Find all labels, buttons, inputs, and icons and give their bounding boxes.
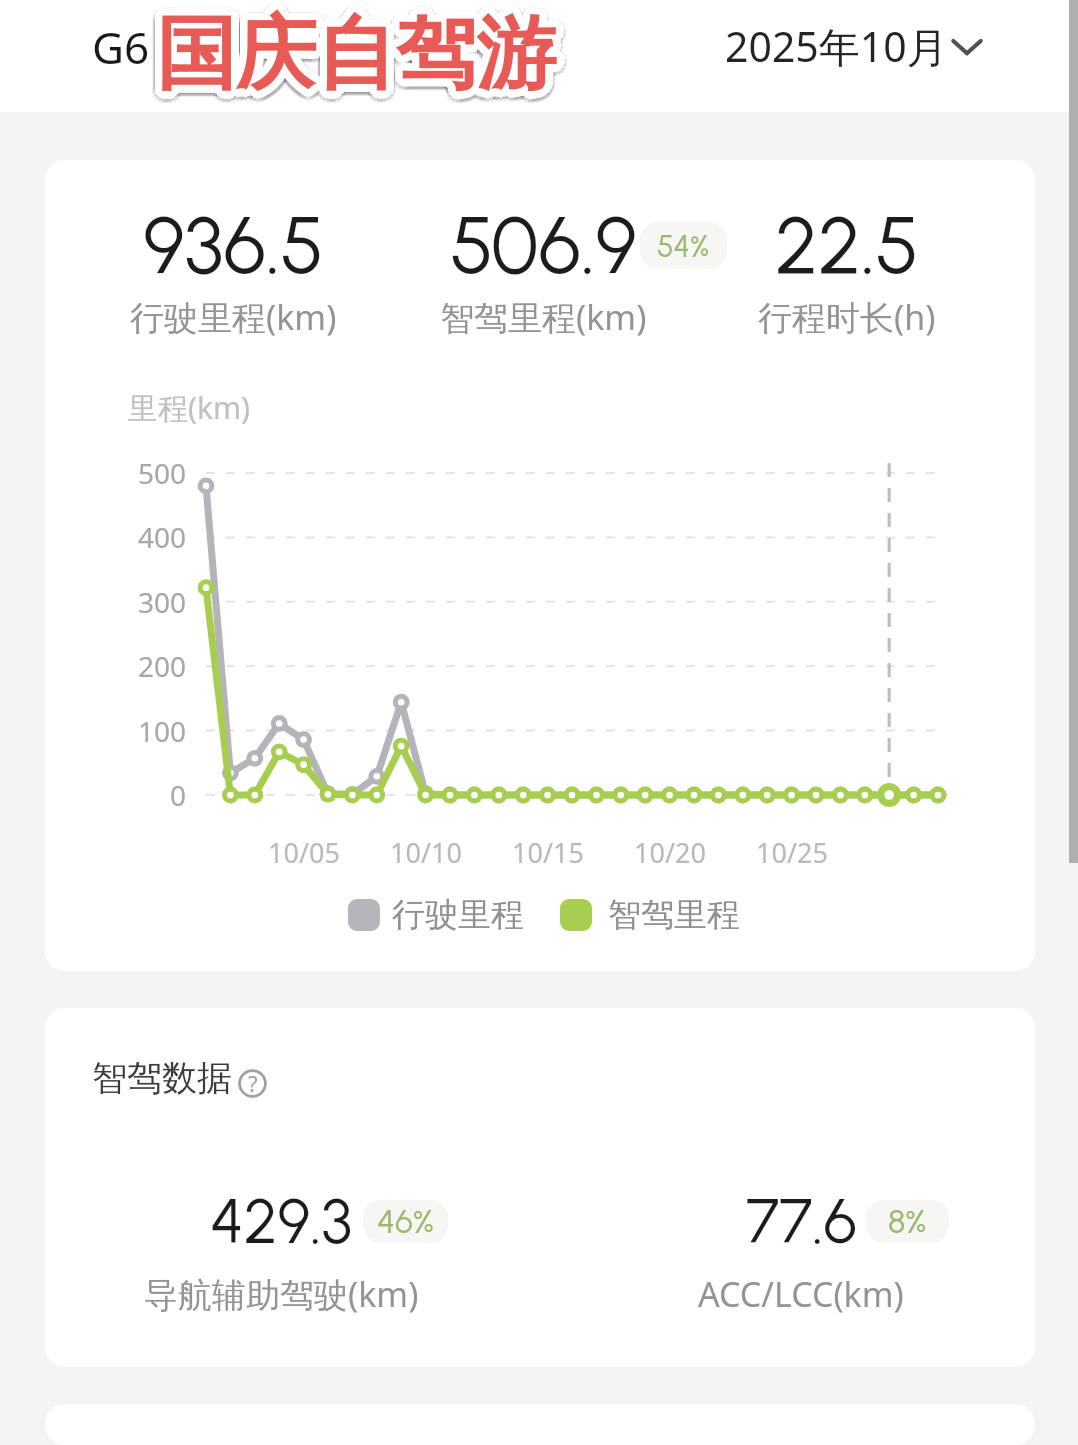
staticText: ACC/LCC(km) [698, 1271, 904, 1317]
staticText: 8% [888, 1202, 927, 1242]
staticText: 国庆自驾游 [151, 0, 551, 100]
staticText: 国庆自驾游 [165, 2, 565, 103]
staticText: 导航辅助驾驶(km) [144, 1271, 419, 1317]
staticText: 200 [45, 647, 186, 685]
staticText: 国庆自驾游 [147, 2, 547, 103]
staticText: 10/15 [448, 834, 648, 871]
staticText: 100 [45, 712, 186, 750]
staticText: 行驶里程(km) [130, 294, 337, 340]
staticText: ? [248, 1068, 258, 1097]
button[interactable]: 智驾数据 [45, 1008, 1035, 1367]
button[interactable]: 智驾数据 [92, 1056, 267, 1100]
staticText: 行程时长(h) [758, 294, 936, 340]
staticText: 国庆自驾游 [166, 6, 566, 107]
staticText: 国庆自驾游 [163, 7, 563, 108]
staticText: 46% [377, 1202, 434, 1242]
staticText: 国庆自驾游 [149, 1, 549, 102]
staticText: 国庆自驾游 [149, 13, 549, 114]
staticText: 国庆自驾游 [156, 12, 556, 113]
staticText: 10/20 [570, 834, 770, 871]
staticText: 里程(km) [128, 387, 251, 428]
staticText: 国庆自驾游 [153, 0, 553, 98]
staticText: 智驾里程(km) [440, 294, 647, 340]
staticText: 0 [45, 776, 186, 814]
staticText: 10/05 [204, 834, 404, 871]
other: 智驾数据说明 [238, 1069, 267, 1098]
staticText: 国庆自驾游 [165, 10, 565, 111]
staticText: 国庆自驾游 [161, 9, 561, 110]
staticText: 国庆自驾游 [156, 16, 556, 117]
staticText: 10/25 [692, 834, 892, 871]
staticText: 国庆自驾游 [159, 11, 559, 112]
staticText: 国庆自驾游 [160, 0, 560, 98]
staticText: G6 [92, 17, 150, 77]
staticText: 国庆自驾游 [149, 4, 549, 105]
staticText: 300 [45, 583, 186, 621]
staticText: 54% [657, 228, 710, 264]
staticText: 国庆自驾游 [163, 1, 563, 102]
staticText: 2025年10月 [725, 18, 948, 74]
staticText: 国庆自驾游 [163, 0, 563, 100]
staticText: 国庆自驾游 [149, 0, 549, 100]
staticText: 10/10 [326, 834, 526, 871]
staticText: 936.5 [143, 198, 324, 293]
staticText: 77.6 [746, 1184, 857, 1258]
staticText: 国庆自驾游 [147, 10, 547, 111]
staticText: 智驾里程 [608, 894, 740, 936]
staticText: 国庆自驾游 [160, 15, 560, 116]
staticText: 国庆自驾游 [161, 0, 561, 100]
staticText: 国庆自驾游 [156, 4, 556, 105]
staticText: 国庆自驾游 [153, 11, 553, 112]
staticText: 国庆自驾游 [151, 9, 551, 110]
staticText: 400 [45, 518, 186, 556]
staticText: 行驶里程 [392, 894, 524, 936]
button[interactable]: 936.5 [45, 160, 1035, 971]
staticText: 506.9 [450, 198, 637, 293]
staticText: 国庆自驾游 [163, 13, 563, 114]
staticText: 国庆自驾游 [164, 4, 564, 105]
staticText: 国庆自驾游 [156, 0, 556, 97]
staticText: 国庆自驾游 [152, 15, 552, 116]
staticText: 国庆自驾游 [152, 0, 552, 98]
staticText: 智驾数据 [92, 1056, 232, 1100]
staticText: 国庆自驾游 [146, 6, 546, 107]
staticText: 429.3 [210, 1184, 352, 1258]
staticText: 国庆自驾游 [149, 7, 549, 108]
staticText: 500 [45, 454, 186, 492]
staticText: 国庆自驾游 [156, 0, 556, 98]
staticText: 22.5 [775, 198, 919, 293]
button[interactable]: 2025年10月 [725, 18, 985, 74]
staticText: 国庆自驾游 [159, 0, 559, 98]
